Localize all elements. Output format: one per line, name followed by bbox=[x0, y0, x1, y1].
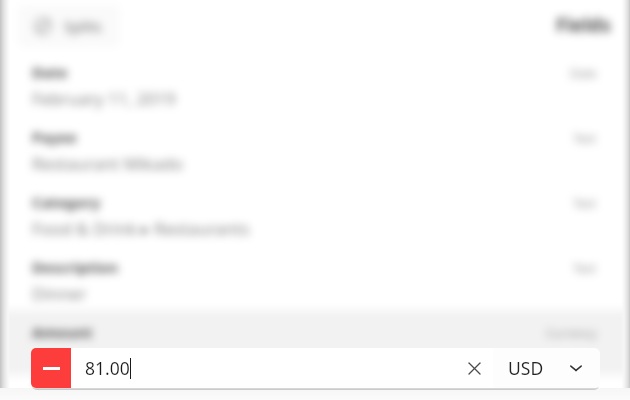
button[interactable]: Splits bbox=[18, 5, 120, 47]
button[interactable]: Clear bbox=[455, 348, 493, 388]
staticText: Currency bbox=[546, 325, 597, 341]
button[interactable]: Payee bbox=[0, 115, 630, 180]
button[interactable]: Category bbox=[0, 180, 630, 245]
button[interactable]: Amount bbox=[0, 310, 630, 375]
button[interactable]: Description bbox=[0, 245, 630, 310]
staticText: Date bbox=[32, 62, 68, 82]
staticText: Payee bbox=[32, 127, 77, 147]
staticText: Restaurant Mikado bbox=[32, 152, 183, 175]
staticText: Date bbox=[570, 65, 597, 81]
staticText: USD bbox=[508, 356, 544, 380]
staticText: Text bbox=[573, 130, 597, 146]
button[interactable]: Negative amount bbox=[31, 348, 71, 388]
staticText: Amount bbox=[32, 322, 93, 342]
staticText: Splits bbox=[64, 16, 102, 36]
staticText: Description bbox=[32, 257, 118, 277]
staticText: Category bbox=[32, 192, 101, 212]
staticText: Food & Drink ▸ Restaurants bbox=[32, 217, 250, 240]
staticText: 81.00 bbox=[85, 356, 130, 380]
button[interactable]: USD bbox=[493, 348, 600, 388]
staticText: Dinner bbox=[32, 282, 87, 305]
staticText: Fields bbox=[556, 12, 611, 38]
staticText: Text bbox=[573, 260, 597, 276]
button[interactable]: Date bbox=[0, 50, 630, 115]
staticText: Text bbox=[573, 195, 597, 211]
staticText: February 11, 2019 bbox=[32, 87, 176, 110]
